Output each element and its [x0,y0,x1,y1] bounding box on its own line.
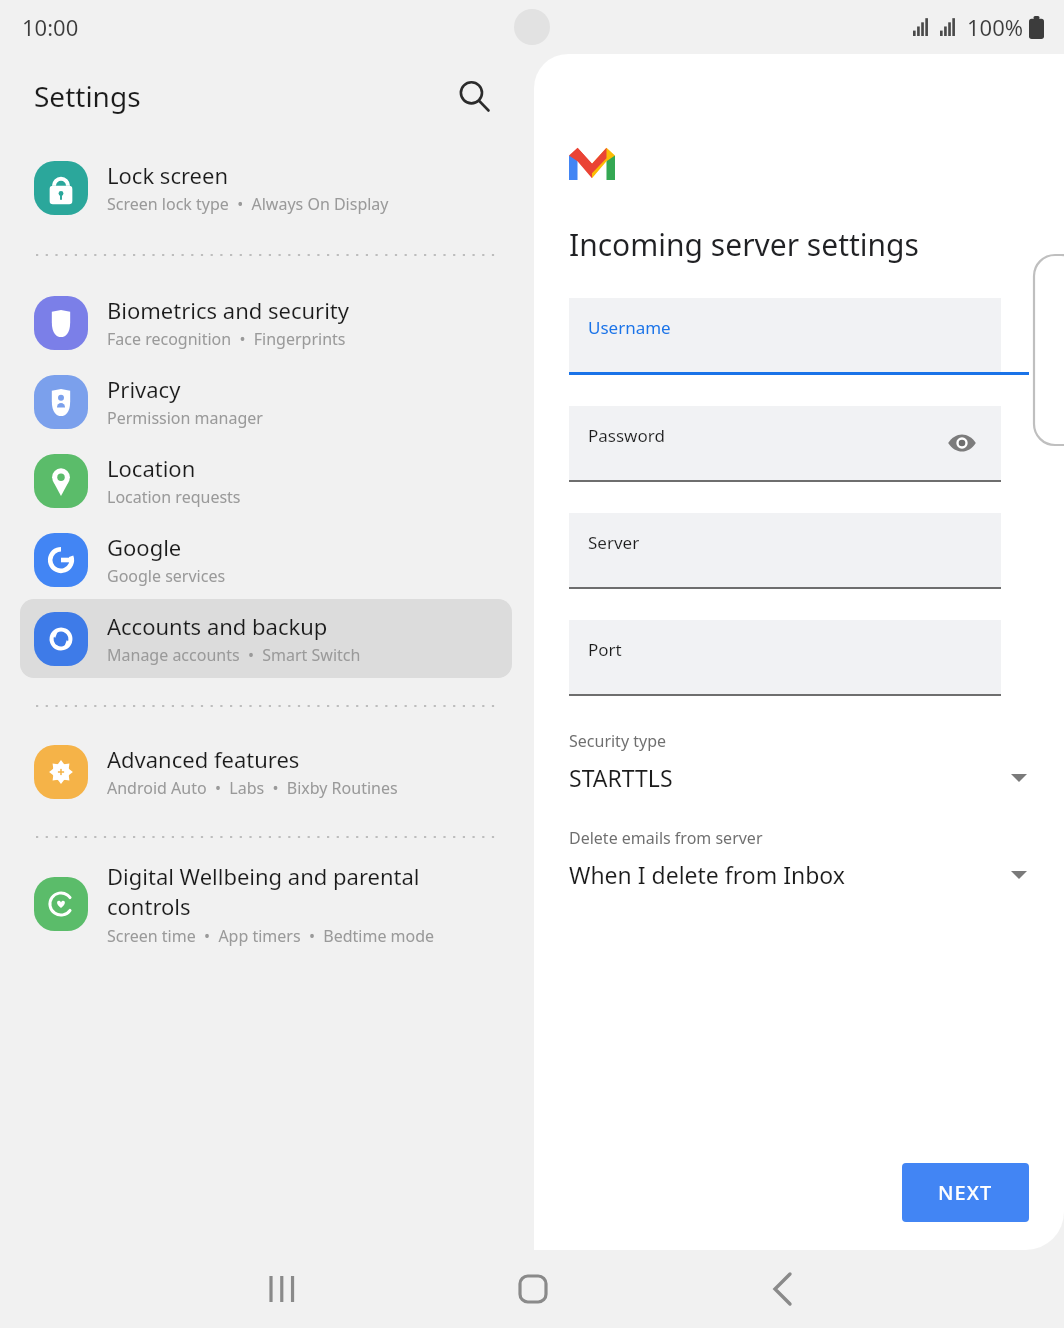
button[interactable]: Security type [569,726,1029,795]
button[interactable]: Location [20,441,512,520]
staticText: Permission manager [107,407,263,429]
button[interactable]: Accounts and backup [20,599,512,678]
staticText: Location [107,453,196,483]
staticText: Server [588,531,640,554]
staticText: Face recognition • Fingerprints [107,328,346,350]
staticText: Privacy [107,374,181,404]
staticText: Accounts and backup [107,611,328,641]
staticText: Security type [569,730,667,752]
button[interactable]: Lock screen [20,148,512,227]
staticText: Incoming server settings [569,224,919,265]
staticText: Screen lock type • Always On Display [107,193,389,215]
staticText: 10:00 [22,12,79,42]
staticText: When I delete from Inbox [569,859,845,890]
staticText: Manage accounts • Smart Switch [107,644,361,666]
button[interactable]: Digital Wellbeing and parental controls [34,861,498,947]
staticText: Location requests [107,486,241,508]
button[interactable]: Privacy [20,362,512,441]
button[interactable]: Recents [157,1250,408,1328]
staticText: Digital Wellbeing and parental controls [107,861,420,922]
staticText: Settings [34,77,141,115]
button[interactable]: Home [408,1250,658,1328]
button[interactable]: Biometrics and security [20,283,512,362]
staticText: Google [107,532,182,562]
staticText: 100% [967,12,1024,42]
button[interactable]: Server [569,513,1001,587]
staticText: Username [588,316,671,339]
button[interactable]: Advanced features [20,732,512,811]
staticText: Android Auto • Labs • Bixby Routines [107,777,398,799]
button[interactable]: Back [658,1250,908,1328]
staticText: Password [588,424,665,447]
staticText: STARTTLS [569,762,673,793]
staticText: Advanced features [107,744,300,774]
staticText: Biometrics and security [107,295,350,325]
button[interactable]: Search [450,72,498,120]
button[interactable]: NEXT [902,1163,1029,1222]
staticText: Delete emails from server [569,827,763,849]
button[interactable]: Username [569,298,1001,372]
button[interactable]: Google [20,520,512,599]
staticText: Screen time • App timers • Bedtime mode [107,925,435,947]
staticText: Lock screen [107,160,229,190]
button[interactable]: Show password [943,424,981,462]
button[interactable]: Delete emails from server [569,823,1029,892]
button[interactable]: Port [569,620,1001,694]
staticText: Port [588,638,622,661]
button[interactable]: Password [569,406,1001,480]
staticText: Google services [107,565,226,587]
staticText: NEXT [938,1179,993,1206]
